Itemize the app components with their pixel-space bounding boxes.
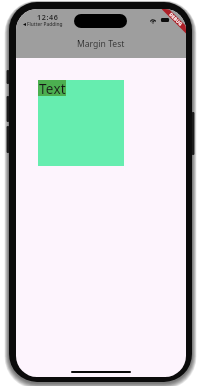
other: Wi-Fi <box>150 19 156 23</box>
staticText: Text <box>39 80 66 96</box>
other: Home indicator <box>71 371 131 373</box>
staticText: 12:46 <box>37 12 59 22</box>
button[interactable]: Text <box>38 80 124 166</box>
button[interactable]: Back to Flutter Padding <box>23 21 63 28</box>
other: Battery <box>161 18 169 22</box>
staticText: Flutter Padding <box>27 21 63 28</box>
staticText: Margin Test <box>77 38 125 50</box>
staticText: DEBUG <box>168 11 184 27</box>
